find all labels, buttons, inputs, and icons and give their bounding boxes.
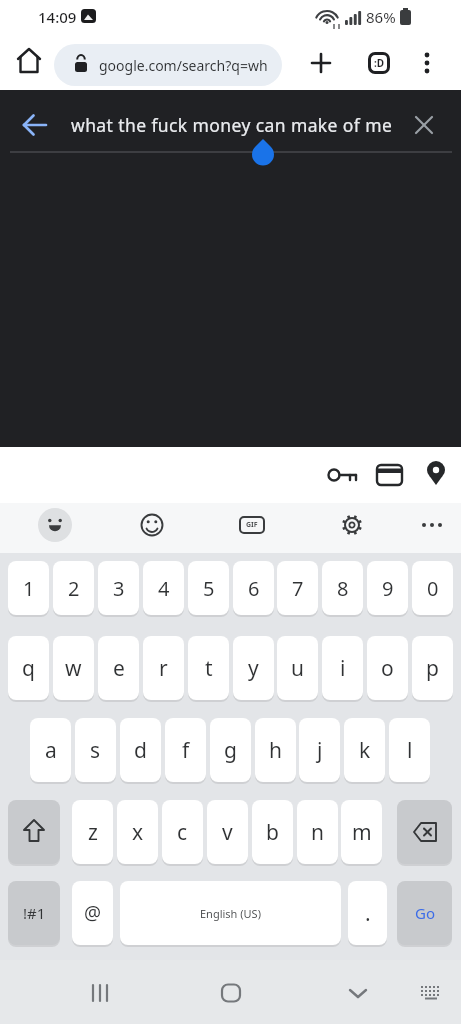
staticText: 5: [203, 575, 215, 602]
button[interactable]: 7: [277, 561, 318, 615]
button[interactable]: m: [341, 800, 382, 864]
button[interactable]: [214, 976, 248, 1010]
button[interactable]: Go: [397, 881, 452, 945]
staticText: GIF: [246, 520, 258, 530]
staticText: c: [177, 818, 188, 847]
button[interactable]: 1: [8, 561, 49, 615]
staticText: google.com/search?q=wh: [99, 56, 268, 75]
button[interactable]: [83, 976, 117, 1010]
button[interactable]: p: [412, 636, 453, 700]
button[interactable]: q: [8, 636, 49, 700]
staticText: n: [311, 818, 324, 847]
staticText: 2: [68, 575, 80, 602]
button[interactable]: i: [322, 636, 363, 700]
button[interactable]: [304, 46, 338, 80]
staticText: t: [205, 654, 213, 683]
staticText: 14:09: [38, 7, 77, 27]
button[interactable]: 3: [98, 561, 139, 615]
staticText: :D: [374, 56, 385, 70]
button[interactable]: 8: [322, 561, 363, 615]
button[interactable]: 6: [233, 561, 274, 615]
staticText: @: [84, 900, 102, 926]
button[interactable]: 0: [412, 561, 453, 615]
button[interactable]: [414, 978, 446, 1008]
button[interactable]: [36, 506, 74, 544]
button[interactable]: f: [165, 718, 206, 782]
staticText: w: [65, 654, 82, 683]
staticText: 1: [23, 575, 35, 602]
button[interactable]: google.com/search?q=wh: [54, 44, 282, 86]
button[interactable]: k: [344, 718, 385, 782]
staticText: b: [266, 818, 279, 847]
button[interactable]: h: [255, 718, 296, 782]
button[interactable]: !#1: [8, 881, 60, 945]
button[interactable]: [420, 456, 452, 494]
staticText: h: [269, 736, 282, 765]
button[interactable]: y: [233, 636, 274, 700]
staticText: v: [222, 818, 233, 847]
button[interactable]: @: [72, 881, 113, 945]
button[interactable]: 5: [188, 561, 229, 615]
button[interactable]: r: [143, 636, 184, 700]
button[interactable]: x: [117, 800, 158, 864]
button[interactable]: u: [277, 636, 318, 700]
button[interactable]: :D: [368, 52, 390, 74]
button[interactable]: b: [252, 800, 293, 864]
button[interactable]: c: [162, 800, 203, 864]
staticText: a: [45, 736, 57, 765]
button[interactable]: s: [75, 718, 116, 782]
staticText: Go: [415, 903, 435, 923]
button[interactable]: 9: [367, 561, 408, 615]
staticText: x: [132, 818, 144, 847]
button[interactable]: [10, 45, 48, 79]
button[interactable]: v: [207, 800, 248, 864]
staticText: 7: [292, 575, 304, 602]
button[interactable]: l: [389, 718, 430, 782]
button[interactable]: d: [120, 718, 161, 782]
button[interactable]: 2: [53, 561, 94, 615]
staticText: 0: [427, 575, 439, 602]
button[interactable]: g: [210, 718, 251, 782]
button[interactable]: 4: [143, 561, 184, 615]
staticText: j: [317, 736, 323, 765]
button[interactable]: z: [72, 800, 113, 864]
button[interactable]: j: [299, 718, 340, 782]
staticText: l: [407, 736, 413, 765]
staticText: o: [381, 654, 394, 683]
button[interactable]: [8, 800, 60, 864]
button[interactable]: English (US): [120, 881, 341, 945]
staticText: !#1: [23, 903, 46, 923]
staticText: 8: [337, 575, 349, 602]
button[interactable]: [397, 800, 452, 864]
button[interactable]: [372, 458, 406, 492]
button[interactable]: [415, 508, 449, 542]
staticText: 6: [248, 575, 260, 602]
button[interactable]: [341, 976, 375, 1010]
button[interactable]: t: [188, 636, 229, 700]
staticText: y: [248, 654, 259, 683]
button[interactable]: [406, 108, 442, 142]
button[interactable]: GIF: [239, 516, 265, 534]
button[interactable]: [412, 46, 442, 80]
staticText: m: [352, 818, 372, 847]
staticText: p: [426, 654, 439, 683]
button[interactable]: [318, 458, 362, 492]
button[interactable]: [135, 508, 169, 542]
staticText: q: [22, 654, 35, 683]
button[interactable]: o: [367, 636, 408, 700]
staticText: 4: [158, 575, 170, 602]
staticText: u: [291, 654, 304, 683]
button[interactable]: a: [30, 718, 71, 782]
staticText: g: [224, 736, 237, 765]
staticText: r: [159, 654, 168, 683]
button[interactable]: n: [297, 800, 338, 864]
staticText: z: [88, 818, 98, 847]
button[interactable]: w: [53, 636, 94, 700]
button[interactable]: [335, 508, 369, 542]
button[interactable]: e: [98, 636, 139, 700]
button[interactable]: .: [348, 881, 387, 945]
staticText: f: [182, 736, 190, 765]
button[interactable]: [16, 108, 52, 142]
staticText: English (US): [200, 906, 261, 921]
staticText: e: [113, 654, 125, 683]
